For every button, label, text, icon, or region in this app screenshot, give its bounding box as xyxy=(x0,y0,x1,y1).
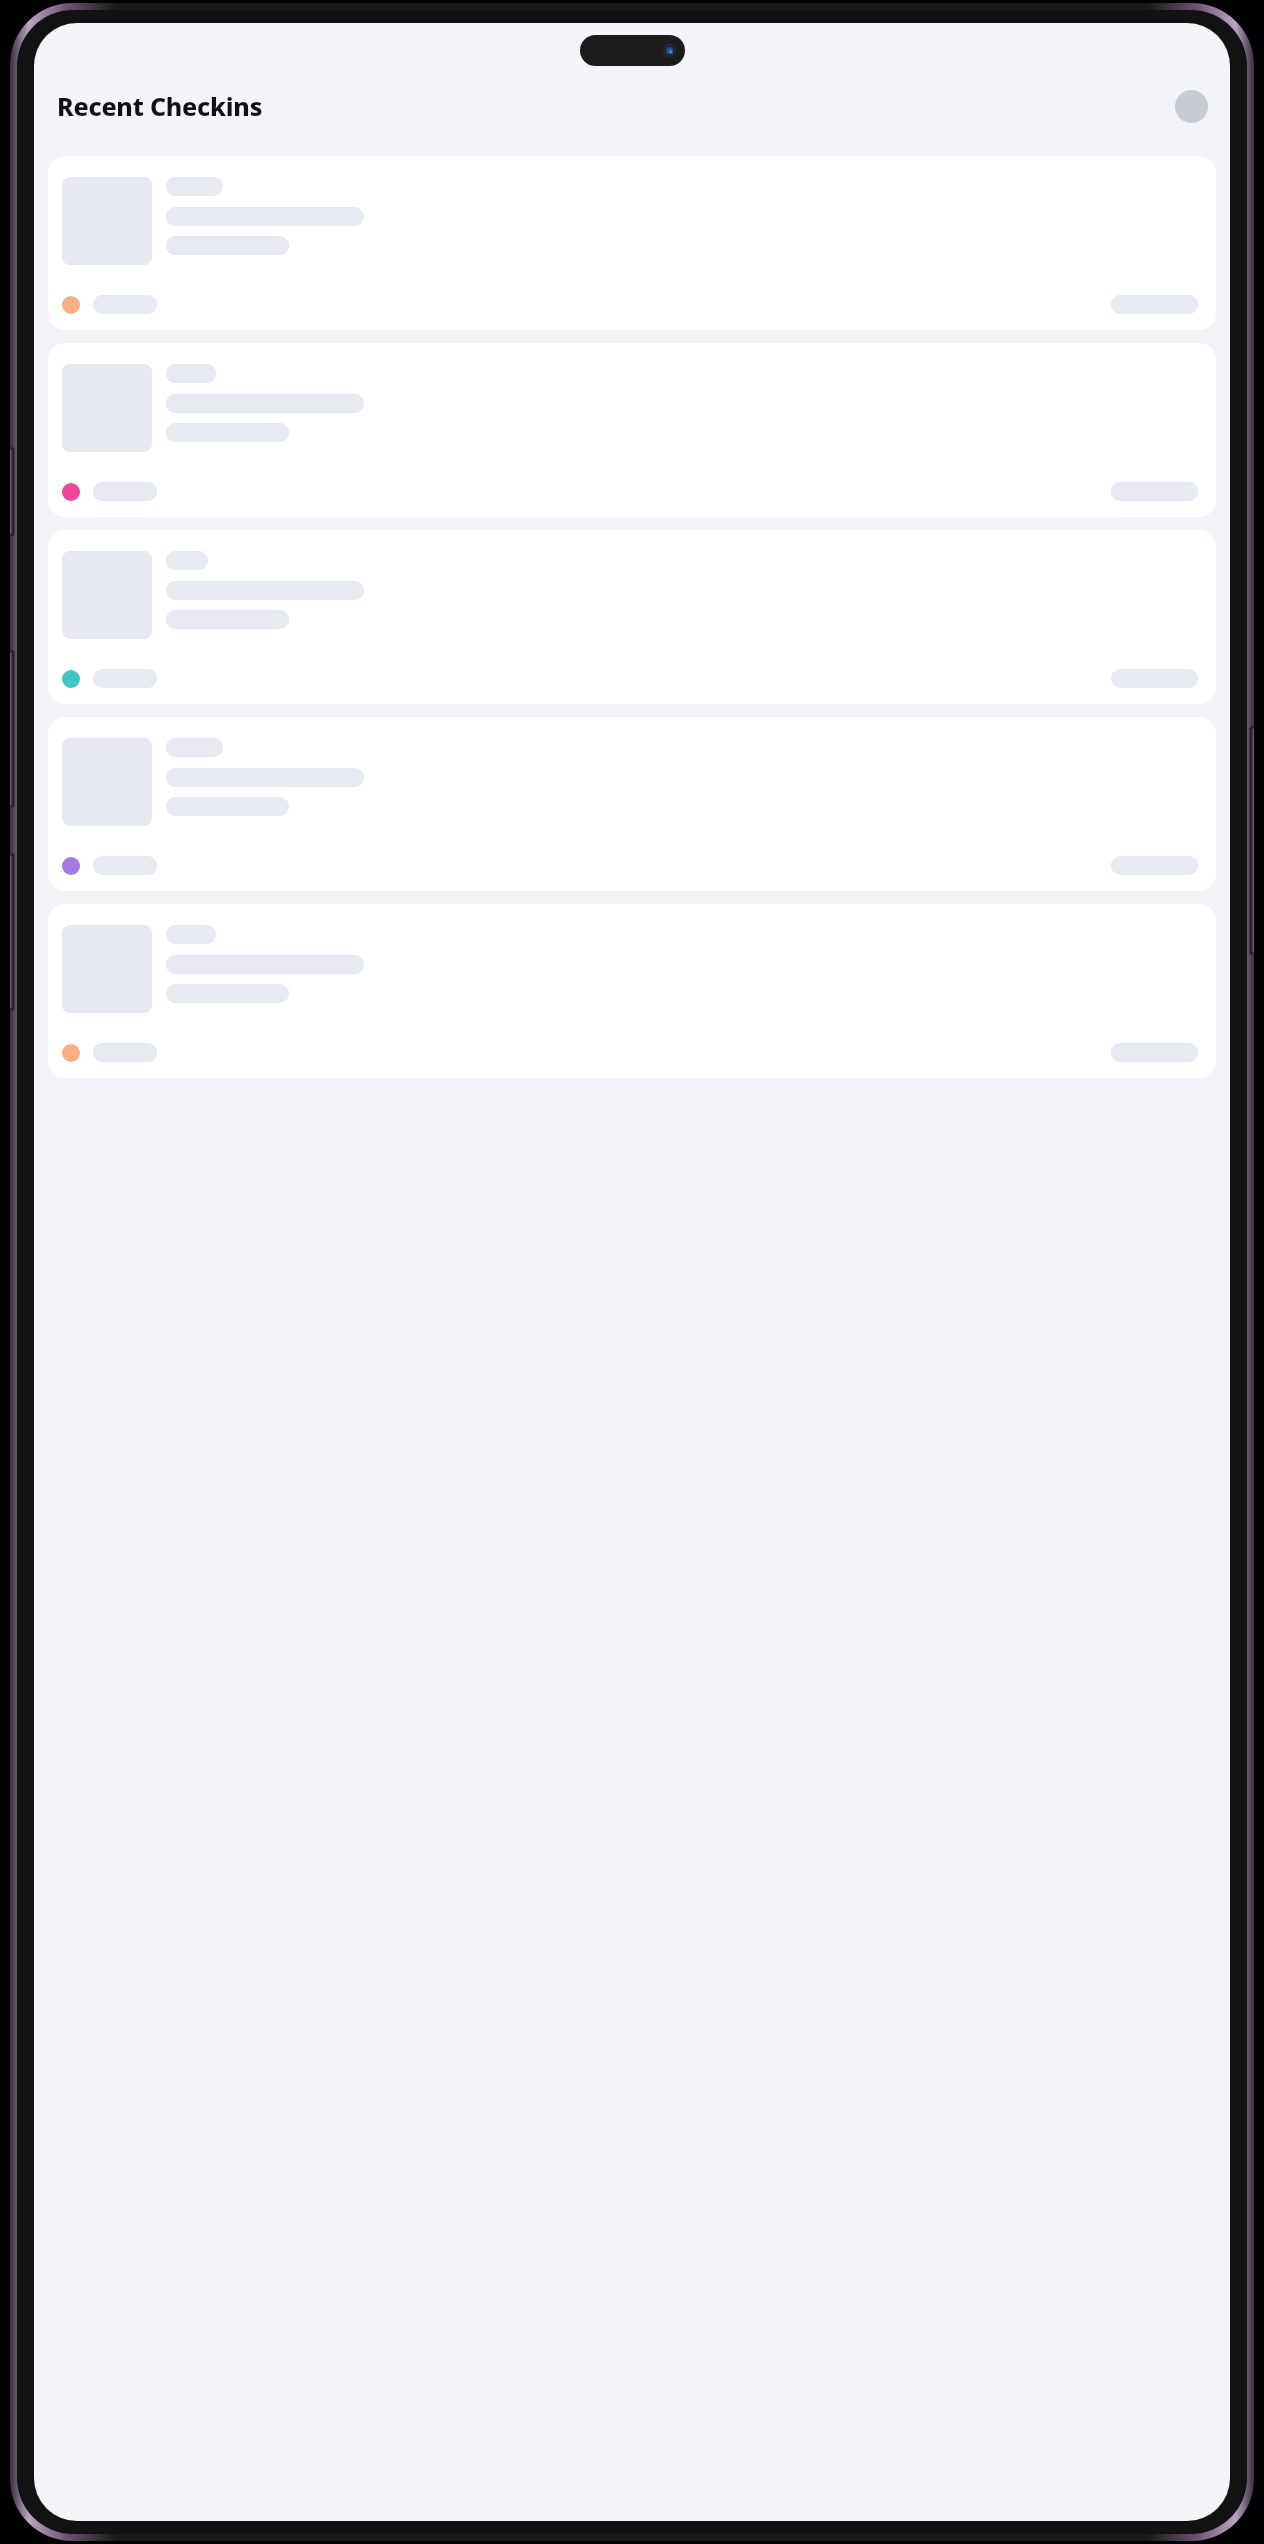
button[interactable] xyxy=(48,343,1216,517)
staticText: Recent Checkins xyxy=(57,89,263,123)
button[interactable]: Profile xyxy=(1175,90,1208,123)
button[interactable] xyxy=(48,156,1216,330)
button[interactable] xyxy=(48,530,1216,704)
button[interactable] xyxy=(48,717,1216,891)
button[interactable] xyxy=(48,904,1216,1078)
